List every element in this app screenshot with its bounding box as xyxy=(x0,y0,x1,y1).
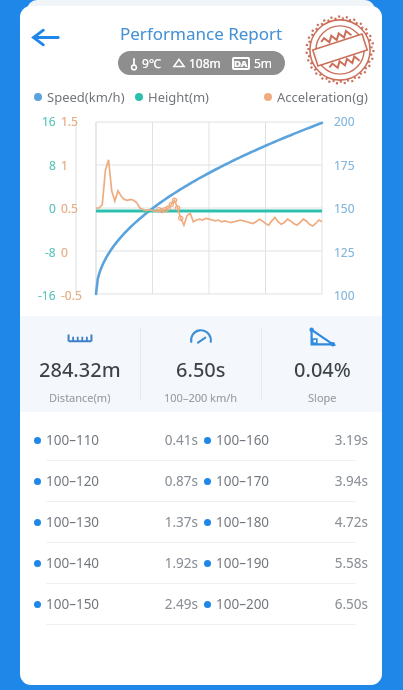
staticText: 4.72s xyxy=(334,513,368,531)
button[interactable]: 284.32m xyxy=(20,316,140,412)
staticText: 5m xyxy=(254,55,273,71)
button[interactable]: 100–110 xyxy=(34,420,368,460)
staticText: 8 xyxy=(49,157,56,173)
staticText: 0 xyxy=(49,200,56,216)
staticText: DA xyxy=(234,57,248,70)
staticText: 100 xyxy=(334,287,355,303)
staticText: 0 xyxy=(61,244,68,260)
staticText: 125 xyxy=(334,244,355,260)
staticText: 3.19s xyxy=(334,431,368,449)
button[interactable]: 100–120 xyxy=(34,461,368,501)
staticText: 3.94s xyxy=(334,472,368,490)
button[interactable]: 6.50s xyxy=(141,316,261,412)
staticText: 100–200 xyxy=(216,595,270,613)
staticText: 9℃ xyxy=(142,55,161,71)
staticText: 100–180 xyxy=(216,513,270,531)
staticText: 100–190 xyxy=(216,554,270,572)
staticText: Slope xyxy=(308,390,337,405)
staticText: Speed(km/h) xyxy=(47,88,125,106)
button[interactable]: 100–130 xyxy=(34,502,368,542)
staticText: 0.87s xyxy=(164,472,198,490)
staticText: 200 xyxy=(334,113,355,129)
staticText: 0.5 xyxy=(61,200,78,216)
staticText: 5.58s xyxy=(334,554,368,572)
staticText: 108m xyxy=(189,55,221,71)
staticText: -16 xyxy=(38,287,56,303)
staticText: 100–170 xyxy=(216,472,270,490)
staticText: 100–160 xyxy=(216,431,270,449)
staticText: 2.49s xyxy=(164,595,198,613)
staticText: 175 xyxy=(334,157,355,173)
button[interactable]: 100–150 xyxy=(34,584,368,624)
staticText: -8 xyxy=(45,244,56,260)
button[interactable]: 100–140 xyxy=(34,543,368,583)
staticText: Acceleration(g) xyxy=(277,88,368,106)
staticText: 100–130 xyxy=(46,513,100,531)
staticText: 1.37s xyxy=(164,513,198,531)
staticText: 284.32m xyxy=(39,356,121,383)
staticText: 150 xyxy=(334,200,355,216)
staticText: 100–150 xyxy=(46,595,100,613)
staticText: 100–200 km/h xyxy=(164,390,238,405)
staticText: 1.5 xyxy=(61,113,78,129)
staticText: Height(m) xyxy=(148,88,209,106)
staticText: 100–140 xyxy=(46,554,100,572)
button[interactable]: 9℃ xyxy=(118,51,285,75)
staticText: -0.5 xyxy=(61,287,82,303)
staticText: 16 xyxy=(42,113,56,129)
staticText: 6.50s xyxy=(176,356,226,383)
staticText: 6.50s xyxy=(334,595,368,613)
staticText: Performance Report xyxy=(120,22,283,45)
staticText: 1 xyxy=(61,157,68,173)
staticText: 100–120 xyxy=(46,472,100,490)
staticText: 0.04% xyxy=(294,356,351,383)
button[interactable]: 0.04% xyxy=(262,316,382,412)
staticText: Distance(m) xyxy=(49,390,111,405)
staticText: 0.41s xyxy=(164,431,198,449)
staticText: 1.92s xyxy=(164,554,198,572)
staticText: 100–110 xyxy=(46,431,100,449)
button[interactable]: Back xyxy=(22,14,68,60)
